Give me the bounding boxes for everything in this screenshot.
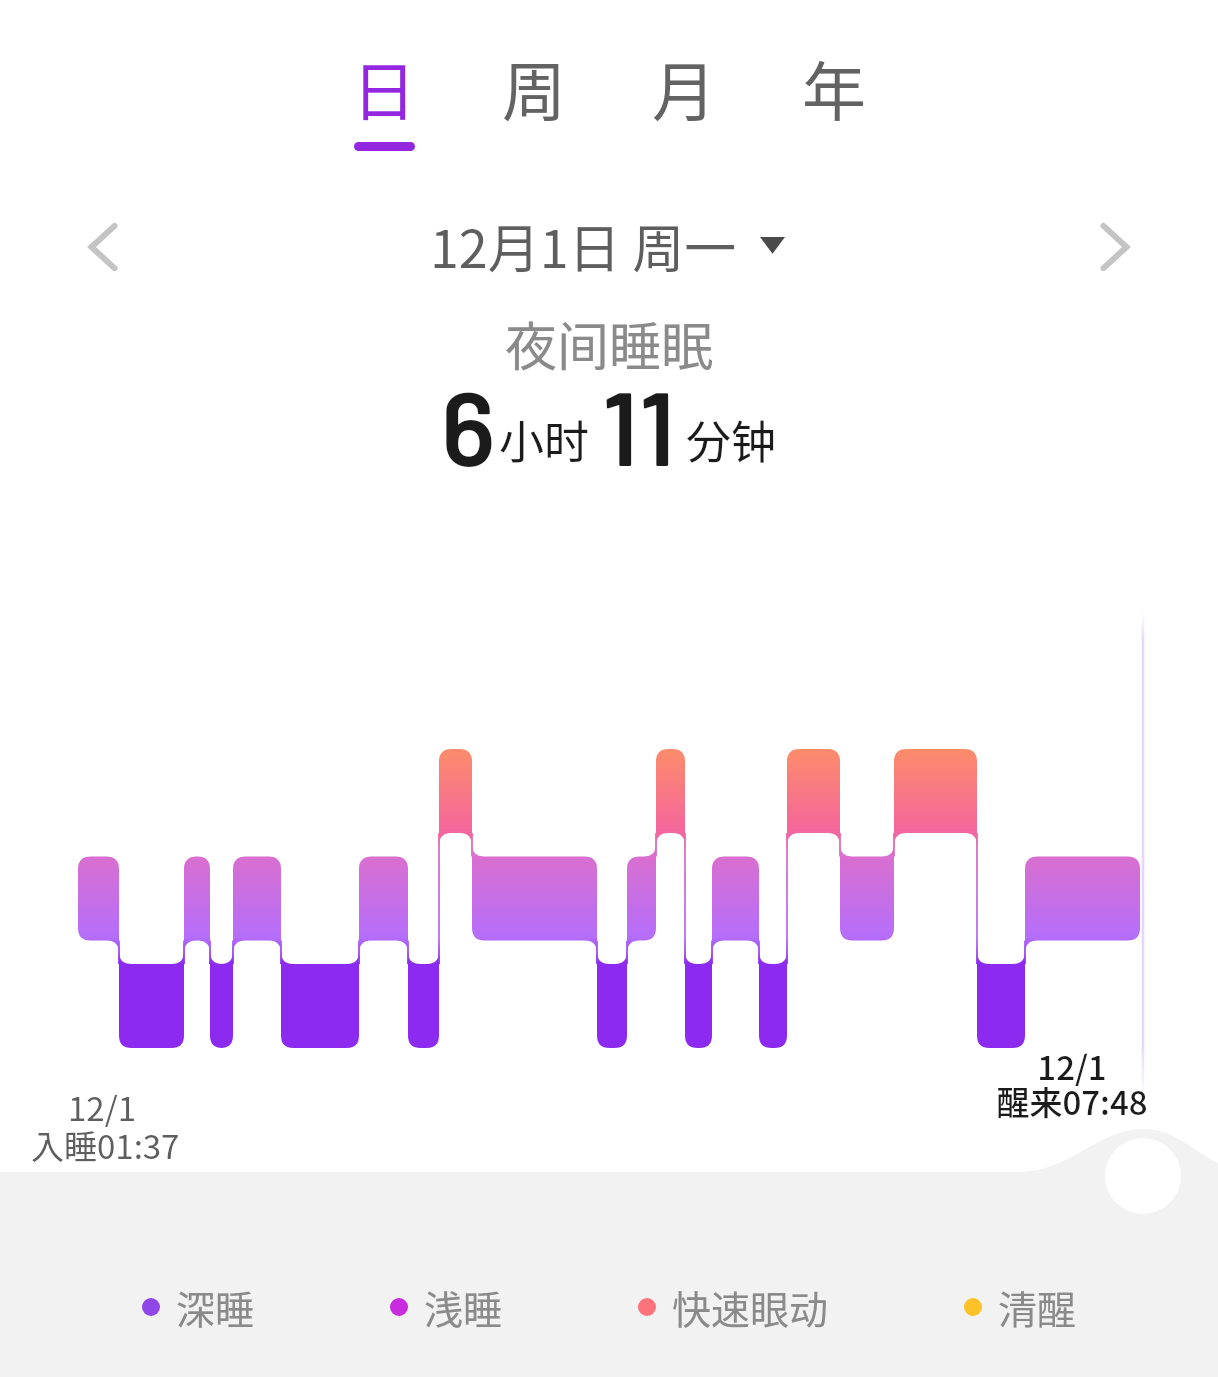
- button[interactable]: Next day: [1018, 199, 1218, 291]
- button[interactable]: 清醒: [964, 1279, 1077, 1335]
- staticText: 11: [602, 363, 676, 487]
- staticText: 12/1: [31, 1083, 173, 1131]
- staticText: 周: [502, 41, 566, 134]
- button[interactable]: 周: [459, 0, 609, 175]
- button[interactable]: 12月1日 周一: [200, 208, 1018, 283]
- staticText: 分钟: [686, 407, 777, 472]
- staticText: 12月1日 周一: [430, 208, 737, 283]
- staticText: 醒来07:48: [922, 1077, 1218, 1125]
- staticText: 夜间睡眠: [0, 306, 1218, 381]
- button[interactable]: 浅睡: [390, 1279, 503, 1335]
- button[interactable]: Add sleep record: [1105, 1138, 1181, 1214]
- staticText: 月: [652, 41, 716, 134]
- button[interactable]: 年: [759, 0, 909, 175]
- staticText: 小时: [499, 407, 590, 472]
- button[interactable]: 快速眼动: [638, 1279, 829, 1335]
- staticText: 日: [352, 41, 416, 134]
- button[interactable]: Previous day: [0, 199, 200, 291]
- staticText: 12/1: [922, 1042, 1218, 1090]
- staticText: 清醒: [998, 1279, 1077, 1335]
- staticText: 6: [441, 363, 496, 487]
- staticText: 入睡01:37: [31, 1121, 180, 1169]
- button[interactable]: 深睡: [142, 1279, 255, 1335]
- button[interactable]: 月: [609, 0, 759, 175]
- staticText: 快速眼动: [672, 1279, 829, 1335]
- staticText: 浅睡: [424, 1279, 503, 1335]
- staticText: 年: [802, 41, 866, 134]
- staticText: 深睡: [176, 1279, 255, 1335]
- button[interactable]: 日: [309, 0, 459, 175]
